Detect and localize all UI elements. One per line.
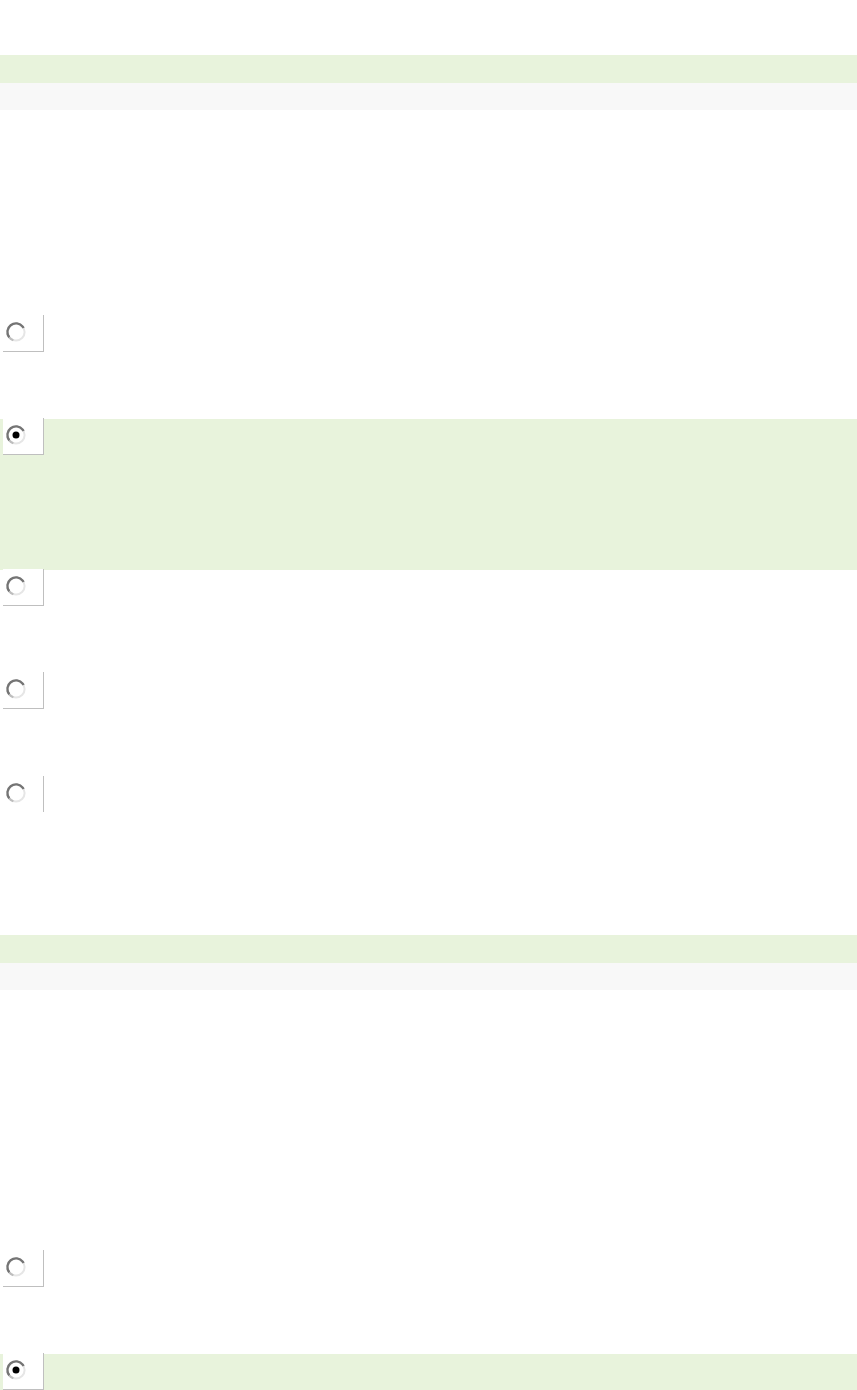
button[interactable] [0,419,857,570]
button[interactable]: Answer option 2, selected [3,1353,44,1390]
button[interactable]: Answer option 4 [3,672,44,709]
button[interactable]: Answer option 1 [3,315,44,352]
button[interactable]: Answer option 3 [3,569,44,606]
button[interactable] [0,1354,857,1390]
button[interactable]: Answer option 5 [3,776,44,813]
button[interactable]: Answer option 1 [3,1250,44,1287]
button[interactable]: Answer option 2, selected [3,418,44,455]
